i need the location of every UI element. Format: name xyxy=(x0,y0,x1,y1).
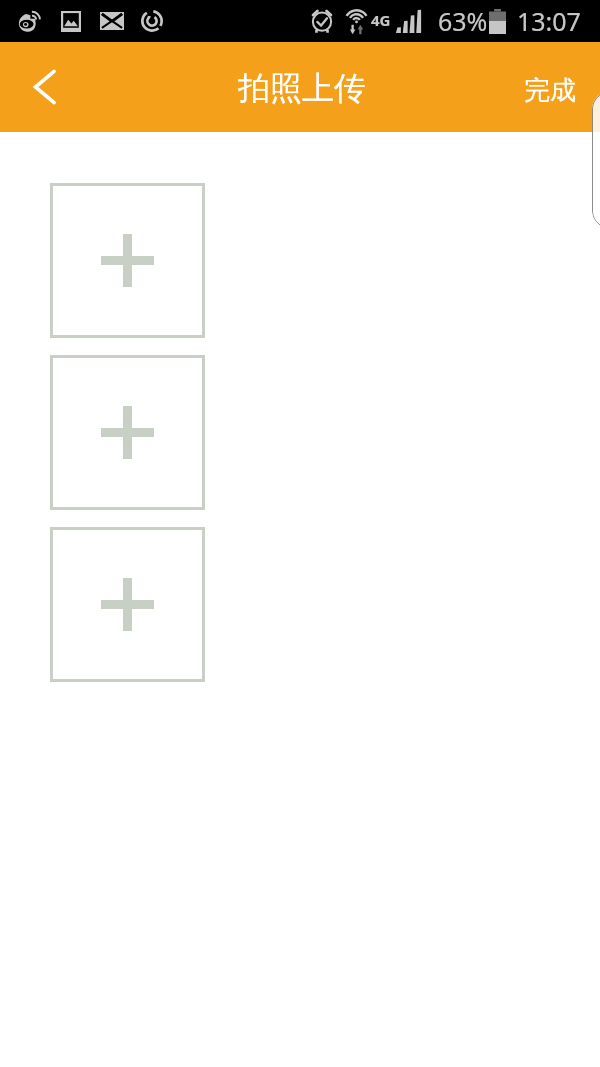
button[interactable]: Add photo xyxy=(50,183,205,338)
button[interactable]: Add photo xyxy=(50,355,205,510)
button[interactable]: More options xyxy=(592,92,600,228)
staticText: 13:07 xyxy=(517,4,581,38)
staticText: 4G xyxy=(371,10,391,30)
button[interactable]: 完成 xyxy=(498,42,600,132)
button[interactable]: Back xyxy=(0,42,89,132)
staticText: 63% xyxy=(438,4,488,38)
button[interactable]: Add photo xyxy=(50,527,205,682)
staticText: 拍照上传 xyxy=(238,68,366,108)
staticText: 完成 xyxy=(524,74,576,107)
